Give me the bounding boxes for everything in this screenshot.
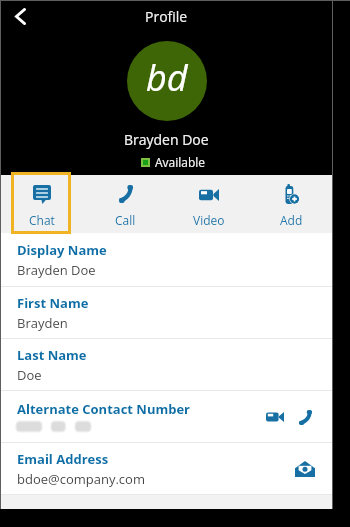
- staticText: Available: [155, 154, 206, 170]
- button[interactable]: Back: [5, 1, 35, 31]
- button[interactable]: Video: [167, 175, 250, 233]
- button[interactable]: Chat tab selected: [11, 172, 71, 234]
- button[interactable]: Video call: [261, 403, 289, 431]
- staticText: Last Name: [17, 346, 87, 364]
- staticText: Profile: [145, 7, 188, 26]
- button[interactable]: Display Name: [0, 233, 333, 287]
- staticText: First Name: [17, 294, 89, 312]
- staticText: Add: [280, 212, 303, 228]
- button[interactable]: First Name: [0, 287, 333, 339]
- staticText: Email Address: [17, 450, 109, 468]
- button[interactable]: Call: [291, 403, 319, 431]
- staticText: bdoe@company.com: [17, 470, 145, 488]
- button[interactable]: Last Name: [0, 339, 333, 391]
- button[interactable]: Alternate Contact Number: [0, 391, 333, 443]
- staticText: Video: [193, 212, 225, 228]
- staticText: bd: [146, 53, 188, 102]
- staticText: Chat: [29, 212, 55, 228]
- staticText: Brayden Doe: [124, 130, 209, 149]
- staticText: Call: [115, 212, 136, 228]
- button[interactable]: Chat: [0, 175, 84, 233]
- staticText: Alternate Contact Number: [17, 400, 191, 418]
- button[interactable]: Call: [84, 175, 167, 233]
- button[interactable]: Email: [291, 455, 319, 483]
- button[interactable]: Email Address: [0, 443, 333, 495]
- staticText: Doe: [17, 366, 42, 384]
- staticText: Brayden: [17, 314, 68, 332]
- staticText: Brayden Doe: [17, 261, 96, 279]
- staticText: Display Name: [17, 241, 107, 259]
- button[interactable]: Add: [250, 175, 333, 233]
